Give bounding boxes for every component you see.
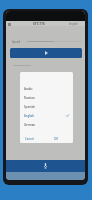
staticText: Spanish (24, 105, 35, 109)
staticText: OK (54, 137, 59, 141)
button[interactable]: Arabic (20, 84, 73, 93)
button[interactable]: German (20, 120, 73, 129)
button[interactable]: Play (10, 48, 82, 58)
staticText: Write something... (13, 64, 32, 67)
button[interactable]: Menu (7, 22, 11, 26)
staticText: Arabic (24, 87, 33, 91)
button[interactable]: Cancel (23, 135, 36, 143)
staticText: Cancel (25, 137, 34, 141)
staticText: English (69, 22, 78, 26)
button[interactable]: OK (52, 135, 61, 143)
button[interactable]: Spanish (20, 102, 73, 111)
staticText: STT-TTS (33, 22, 45, 26)
staticText: German (24, 123, 36, 127)
staticText: Speed (12, 40, 21, 44)
button[interactable]: Microphone (6, 160, 85, 172)
staticText: English (24, 114, 34, 118)
staticText: Russian (24, 96, 35, 100)
button[interactable]: English (20, 111, 73, 120)
button[interactable]: Russian (20, 93, 73, 102)
